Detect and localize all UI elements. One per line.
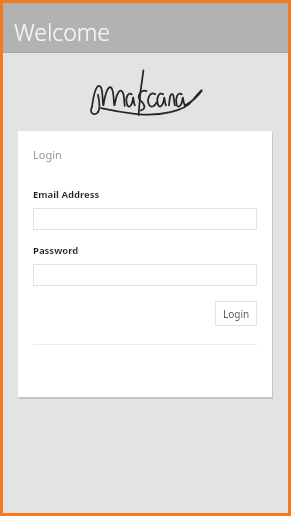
staticText: Welcome [14,16,111,47]
button[interactable]: Login [215,301,257,326]
other: Mashcara logo [88,69,204,115]
button[interactable] [33,208,257,230]
staticText: Password [33,244,79,257]
staticText: Login [33,147,62,162]
staticText: Login [223,307,250,321]
button[interactable] [33,264,257,286]
staticText: Email Address [33,188,100,201]
